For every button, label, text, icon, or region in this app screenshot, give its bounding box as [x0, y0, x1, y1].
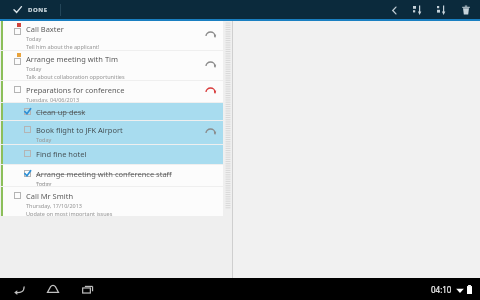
button[interactable]: Arrange meeting with conference staff [1, 165, 223, 186]
staticText: Update on most important issues [26, 210, 113, 216]
button[interactable]: Back [10, 280, 28, 298]
staticText: Today [26, 65, 42, 72]
staticText: Book flight to JFK Airport [36, 125, 123, 135]
button[interactable]: Back [386, 2, 402, 18]
staticText: Today [36, 136, 52, 143]
button[interactable]: Preparations for conference [1, 81, 223, 102]
staticText: Today [36, 180, 52, 186]
button[interactable]: Delete [458, 2, 474, 18]
staticText: Talk about collaboration opportunities [26, 73, 125, 80]
staticText: Today [26, 35, 42, 42]
staticText: Arrange meeting with conference staff [36, 169, 172, 179]
staticText: Call Baxter [26, 24, 64, 34]
button[interactable]: Sort descending [410, 2, 426, 18]
staticText: Clean up desk [36, 107, 86, 117]
staticText: Tell him about the applicant! [26, 43, 100, 50]
staticText: Find fine hotel [36, 149, 87, 159]
staticText: Thursday, 17/10/2013 [26, 202, 82, 209]
staticText: Call Mr Smith [26, 191, 74, 201]
staticText: 04:10 [431, 284, 452, 295]
button[interactable]: Recent apps [78, 280, 96, 298]
button[interactable]: Sort ascending [434, 2, 450, 18]
staticText: Tuesday, 04/06/2013 [26, 96, 80, 102]
button[interactable]: Call Baxter [1, 21, 223, 50]
button[interactable]: Call Mr Smith [1, 187, 223, 216]
button[interactable]: Home [44, 280, 62, 298]
button[interactable]: Find fine hotel [1, 145, 223, 164]
staticText: DONE [28, 6, 48, 14]
staticText: Arrange meeting with Tim [26, 54, 119, 64]
button[interactable]: Book flight to JFK Airport [1, 121, 223, 144]
button[interactable]: Clean up desk [1, 103, 223, 120]
button[interactable]: Arrange meeting with Tim [1, 51, 223, 80]
staticText: Preparations for conference [26, 85, 125, 95]
button[interactable]: DONE [8, 2, 52, 17]
